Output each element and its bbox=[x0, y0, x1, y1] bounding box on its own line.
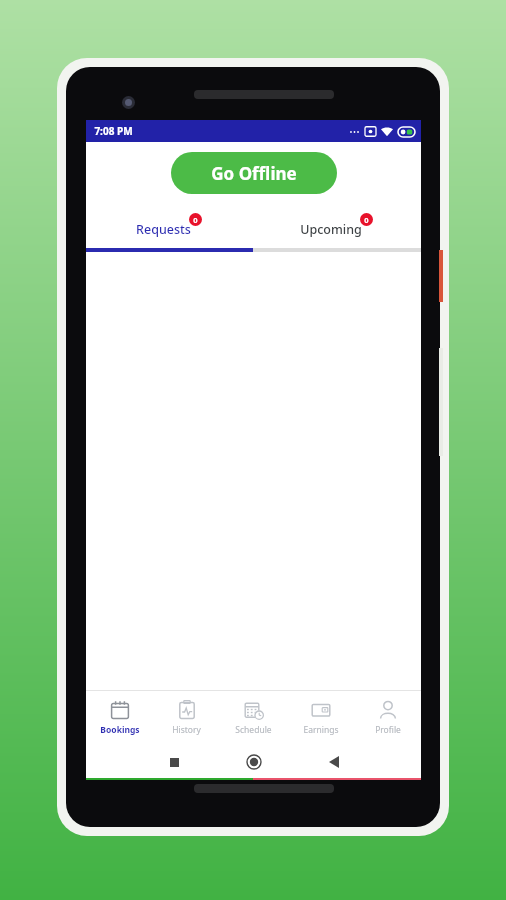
button[interactable]: History bbox=[153, 691, 220, 744]
button[interactable]: Back bbox=[294, 744, 374, 780]
staticText: Go Offline bbox=[211, 162, 297, 185]
staticText: 0 bbox=[193, 215, 198, 225]
staticText: Schedule bbox=[235, 724, 272, 736]
button[interactable]: Schedule bbox=[220, 691, 287, 744]
button[interactable]: Profile bbox=[354, 691, 421, 744]
button[interactable]: Bookings bbox=[86, 691, 153, 744]
staticText: Earnings bbox=[303, 724, 339, 736]
staticText: History bbox=[172, 724, 201, 736]
staticText: Upcoming bbox=[300, 221, 362, 238]
button[interactable]: Earnings bbox=[287, 691, 354, 744]
staticText: 0 bbox=[364, 215, 369, 225]
staticText: 7:08 PM bbox=[94, 124, 133, 138]
staticText: Bookings bbox=[100, 724, 140, 736]
button[interactable]: Recents bbox=[134, 744, 214, 780]
button[interactable]: Upcoming bbox=[253, 204, 421, 248]
button[interactable]: Go Offline bbox=[171, 152, 337, 194]
button[interactable]: Home bbox=[214, 744, 294, 780]
staticText: Requests bbox=[136, 221, 191, 238]
staticText: Profile bbox=[375, 724, 401, 736]
button[interactable]: Requests bbox=[86, 204, 253, 248]
